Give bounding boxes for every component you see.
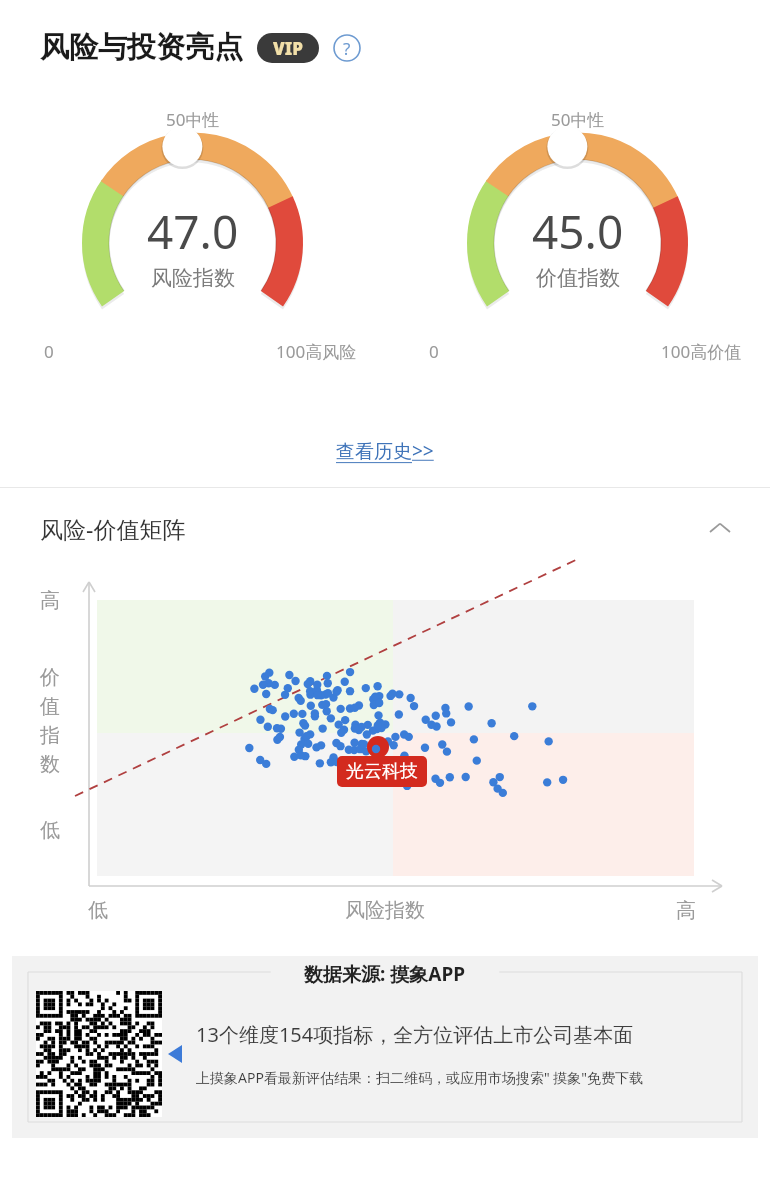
- staticText: 0: [44, 340, 54, 363]
- staticText: 查看历史>>: [336, 438, 434, 464]
- staticText: 风险指数: [151, 265, 235, 291]
- staticText: 数据来源: 摸象APP: [304, 961, 466, 987]
- staticText: 高: [676, 898, 696, 923]
- staticText: 50中性: [166, 108, 220, 131]
- staticText: 风险指数: [345, 898, 425, 923]
- staticText: 值: [40, 694, 60, 719]
- staticText: 价: [40, 665, 60, 690]
- staticText: 指: [40, 723, 60, 748]
- staticText: 45.0: [532, 200, 624, 263]
- staticText: ?: [343, 37, 351, 60]
- staticText: 高: [40, 588, 60, 613]
- staticText: 100高价值: [661, 340, 742, 363]
- staticText: 低: [40, 818, 60, 843]
- staticText: 13个维度154项指标，全方位评估上市公司基本面: [196, 1021, 634, 1048]
- button[interactable]: 光云科技: [337, 756, 427, 787]
- button[interactable]: 查看历史>>: [330, 432, 440, 470]
- staticText: 上摸象APP看最新评估结果：扫二维码，或应用市场搜索" 摸象"免费下载: [196, 1068, 643, 1087]
- button[interactable]: 帮助: [333, 34, 361, 62]
- button[interactable]: 风险-价值矩阵: [0, 488, 770, 568]
- staticText: 光云科技: [346, 760, 418, 783]
- button[interactable]: VIP: [257, 33, 319, 63]
- staticText: 风险-价值矩阵: [40, 513, 186, 544]
- staticText: 50中性: [551, 108, 605, 131]
- staticText: 数: [40, 752, 60, 777]
- other: 收起: [706, 514, 734, 542]
- staticText: 低: [88, 898, 108, 923]
- staticText: 100高风险: [276, 340, 357, 363]
- staticText: 0: [429, 340, 439, 363]
- staticText: VIP: [273, 37, 304, 60]
- staticText: 风险与投资亮点: [40, 29, 243, 66]
- staticText: 价值指数: [536, 265, 620, 291]
- staticText: 47.0: [147, 200, 239, 263]
